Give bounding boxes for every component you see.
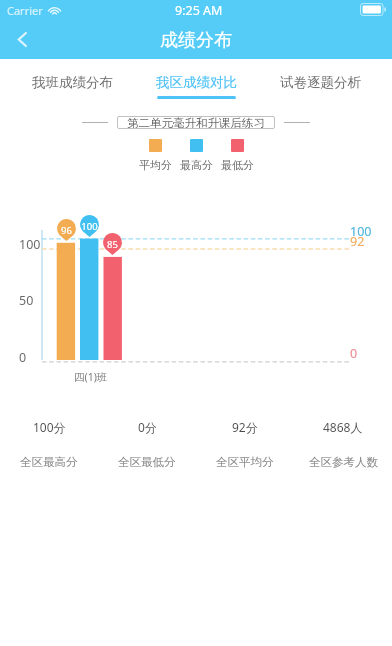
staticText: 50 — [19, 292, 34, 309]
staticText: 平均分 — [139, 158, 172, 172]
staticText: 0分 — [138, 419, 157, 435]
staticText: Carrier — [7, 3, 43, 18]
staticText: 四(1)班 — [74, 370, 108, 384]
staticText: 0 — [19, 349, 27, 366]
staticText: 100分 — [33, 419, 66, 435]
staticText: 最低分 — [221, 158, 254, 172]
staticText: 最高分 — [180, 158, 213, 172]
staticText: 我班成绩分布 — [32, 74, 113, 91]
staticText: 85 — [107, 238, 118, 251]
staticText: 试卷逐题分析 — [280, 74, 361, 91]
button[interactable]: 试卷逐题分析 — [258, 59, 382, 104]
staticText: 成绩分布 — [160, 29, 232, 52]
staticText: 全区参考人数 — [309, 455, 378, 469]
staticText: 92 — [350, 233, 365, 250]
staticText: 100 — [81, 220, 98, 233]
button[interactable]: 我班成绩分布 — [10, 59, 134, 104]
staticText: 全区平均分 — [216, 455, 274, 469]
staticText: 100 — [350, 223, 372, 240]
staticText: 全区最高分 — [20, 455, 78, 469]
staticText: 96 — [61, 224, 72, 237]
staticText: 92分 — [232, 419, 258, 435]
button[interactable]: 我区成绩对比 — [134, 59, 258, 104]
staticText: 0 — [350, 345, 358, 362]
button[interactable]: Back — [0, 20, 44, 59]
staticText: 全区最低分 — [118, 455, 176, 469]
staticText: 4868人 — [323, 419, 363, 435]
staticText: 第二单元毫升和升课后练习 — [127, 116, 265, 129]
staticText: 9:25 AM — [175, 2, 223, 19]
staticText: 100 — [19, 236, 41, 253]
staticText: 我区成绩对比 — [156, 74, 237, 91]
